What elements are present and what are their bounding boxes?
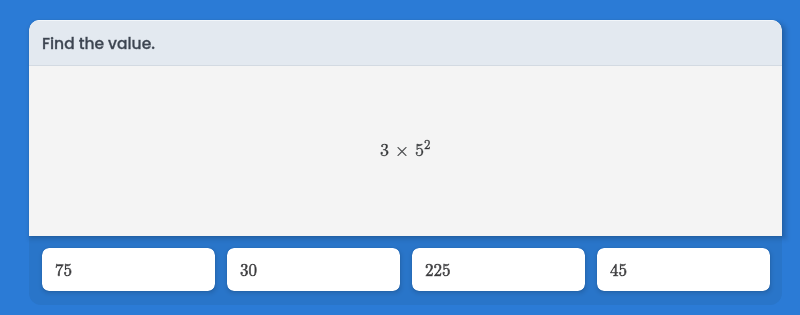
staticText: 30 xyxy=(240,257,257,281)
button[interactable]: 30 xyxy=(227,248,400,291)
staticText: 225 xyxy=(425,257,451,281)
staticText: 45 xyxy=(610,257,627,281)
button[interactable]: 225 xyxy=(412,248,585,291)
staticText: 225 xyxy=(425,257,451,281)
staticText: 75 xyxy=(55,257,72,281)
staticText: 75 xyxy=(55,257,72,281)
staticText: Find the value. xyxy=(42,33,155,55)
staticText: Find the value. xyxy=(42,33,155,55)
staticText: 30 xyxy=(240,257,257,281)
staticText: 3 × 52 xyxy=(380,134,431,161)
staticText: 3 × 52 xyxy=(380,134,431,161)
staticText: 45 xyxy=(610,257,627,281)
button[interactable]: 75 xyxy=(42,248,215,291)
button[interactable]: 45 xyxy=(597,248,770,291)
